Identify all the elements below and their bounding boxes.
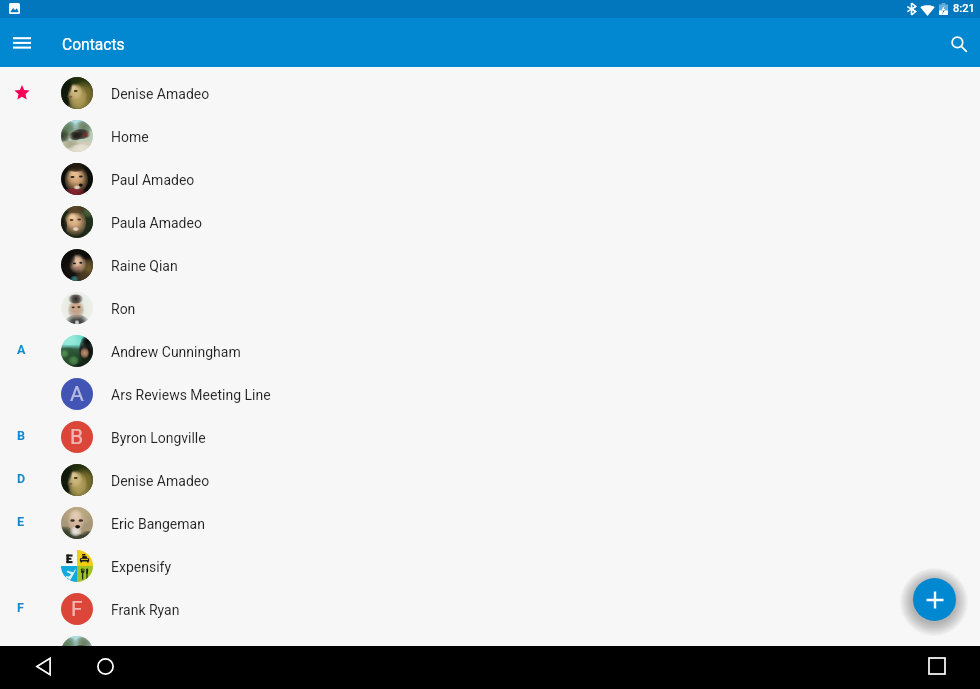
- staticText: A: [17, 342, 26, 357]
- staticText: Frank Ryan: [111, 602, 180, 618]
- staticText: Raine Qian: [111, 258, 178, 274]
- staticText: B: [70, 425, 84, 450]
- button[interactable]: Raine Qian: [0, 243, 980, 286]
- button[interactable]: A: [0, 329, 980, 372]
- staticText: Andrew Cunningham: [111, 344, 241, 360]
- staticText: Ron: [111, 301, 136, 317]
- staticText: 8:21: [953, 2, 975, 15]
- staticText: Home: [111, 129, 149, 145]
- staticText: F: [71, 597, 83, 622]
- staticText: F: [17, 600, 24, 615]
- staticText: Paula Amadeo: [111, 215, 202, 231]
- staticText: A: [70, 382, 84, 407]
- staticText: Byron Longville: [111, 430, 206, 446]
- button[interactable]: Home: [89, 650, 121, 682]
- staticText: Eric Bangeman: [111, 516, 205, 532]
- staticText: E: [17, 514, 25, 529]
- staticText: B: [17, 428, 26, 443]
- button[interactable]: E: [0, 501, 980, 544]
- button[interactable]: Paul Amadeo: [0, 157, 980, 200]
- button[interactable]: Search: [936, 18, 980, 67]
- button[interactable]: Home: [0, 114, 980, 157]
- button[interactable]: Expensify: [0, 544, 980, 587]
- button[interactable]: Open navigation drawer: [0, 18, 43, 67]
- button[interactable]: B: [0, 415, 980, 458]
- button[interactable]: Add contact: [913, 578, 956, 621]
- staticText: Denise Amadeo: [111, 86, 210, 102]
- staticText: D: [17, 471, 26, 486]
- staticText: Contacts: [62, 36, 125, 54]
- button[interactable]: D: [0, 458, 980, 501]
- button[interactable]: Denise Amadeo: [0, 71, 980, 114]
- button[interactable]: Home: [0, 630, 980, 646]
- staticText: Ars Reviews Meeting Line: [111, 387, 271, 403]
- staticText: Expensify: [111, 559, 172, 575]
- button[interactable]: Ron: [0, 286, 980, 329]
- button[interactable]: A: [0, 372, 980, 415]
- button[interactable]: Paula Amadeo: [0, 200, 980, 243]
- button[interactable]: Recent apps: [921, 650, 953, 682]
- staticText: Paul Amadeo: [111, 172, 195, 188]
- button[interactable]: Back: [27, 650, 59, 682]
- staticText: Denise Amadeo: [111, 473, 210, 489]
- button[interactable]: F: [0, 587, 980, 630]
